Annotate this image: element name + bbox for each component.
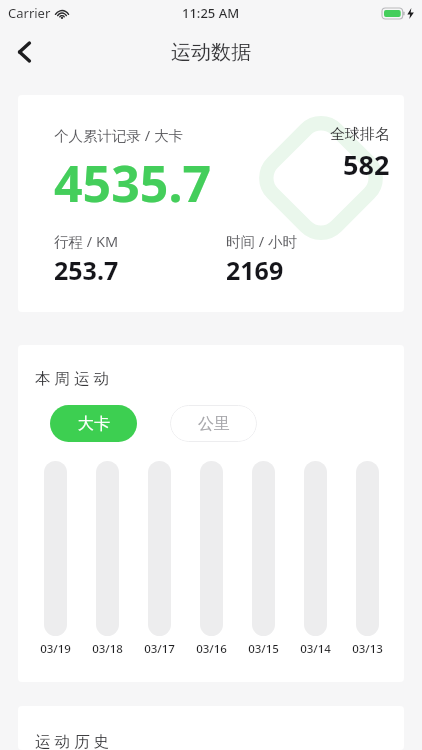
button[interactable] [241,461,285,636]
staticText: 11:25 AM [182,4,240,22]
staticText: 03/18 [92,641,123,657]
staticText: 03/13 [352,641,383,657]
staticText: 03/14 [300,641,331,657]
button[interactable] [293,461,337,636]
staticText: 2169 [226,253,284,287]
button[interactable] [137,461,181,636]
button[interactable] [33,461,77,636]
staticText: 4535.7 [54,149,212,217]
staticText: 公里 [198,414,230,434]
button[interactable]: 大卡 [50,405,137,442]
button[interactable]: Back [0,28,48,76]
staticText: 运动数据 [171,40,251,65]
staticText: 运 动 历 史 [35,730,110,750]
staticText: 03/16 [196,641,227,657]
button[interactable]: 全球排名 [18,95,404,312]
staticText: 全球排名 [330,125,390,144]
staticText: 03/19 [40,641,71,657]
button[interactable]: 公里 [170,405,257,442]
staticText: 大卡 [78,414,110,434]
staticText: 本 周 运 动 [35,367,110,388]
staticText: 时间 / 小时 [226,231,297,251]
staticText: 253.7 [54,253,119,287]
staticText: 行程 / KM [54,231,119,251]
staticText: 个人累计记录 / 大卡 [54,125,183,145]
staticText: 582 [343,146,390,183]
staticText: Carrier [8,4,51,22]
staticText: 03/15 [248,641,279,657]
button[interactable] [189,461,233,636]
button[interactable] [85,461,129,636]
button[interactable] [345,461,389,636]
staticText: 03/17 [144,641,175,657]
